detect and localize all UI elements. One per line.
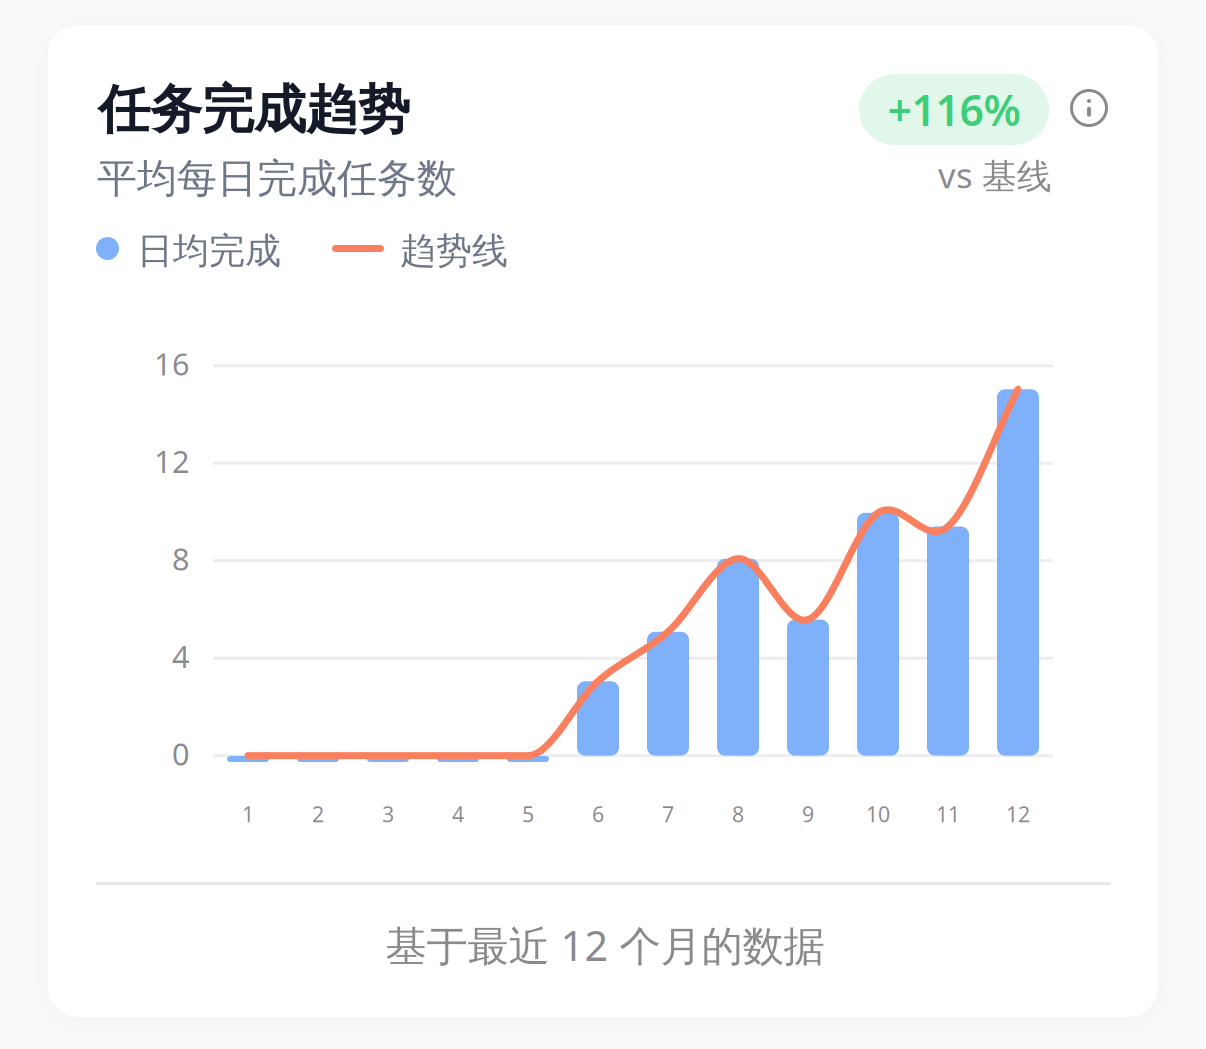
staticText: 平均每日完成任务数 bbox=[97, 154, 457, 203]
staticText: 9 bbox=[802, 800, 814, 828]
staticText: 16 bbox=[154, 343, 190, 384]
staticText: 8 bbox=[732, 800, 744, 828]
staticText: 12 bbox=[154, 441, 190, 481]
staticText: 12 bbox=[1006, 800, 1030, 828]
staticText: +116% bbox=[887, 81, 1020, 138]
staticText: 趋势线 bbox=[400, 229, 508, 273]
staticText: 0 bbox=[172, 733, 190, 774]
staticText: 日均完成 bbox=[137, 229, 281, 273]
staticText: 3 bbox=[382, 800, 394, 828]
staticText: 基于最近 12 个月的数据 bbox=[385, 918, 824, 972]
staticText: vs 基线 bbox=[938, 152, 1052, 198]
staticText: 10 bbox=[866, 800, 890, 828]
staticText: 任务完成趋势 bbox=[98, 78, 410, 142]
staticText: 6 bbox=[592, 800, 604, 828]
staticText: 4 bbox=[452, 800, 464, 828]
staticText: 2 bbox=[312, 800, 324, 828]
staticText: 4 bbox=[172, 636, 190, 676]
staticText: 11 bbox=[936, 800, 960, 828]
staticText: 1 bbox=[242, 800, 254, 828]
staticText: 5 bbox=[522, 800, 534, 828]
button[interactable]: 更多信息 bbox=[1067, 86, 1111, 130]
staticText: 7 bbox=[662, 800, 674, 828]
staticText: 8 bbox=[172, 538, 190, 579]
